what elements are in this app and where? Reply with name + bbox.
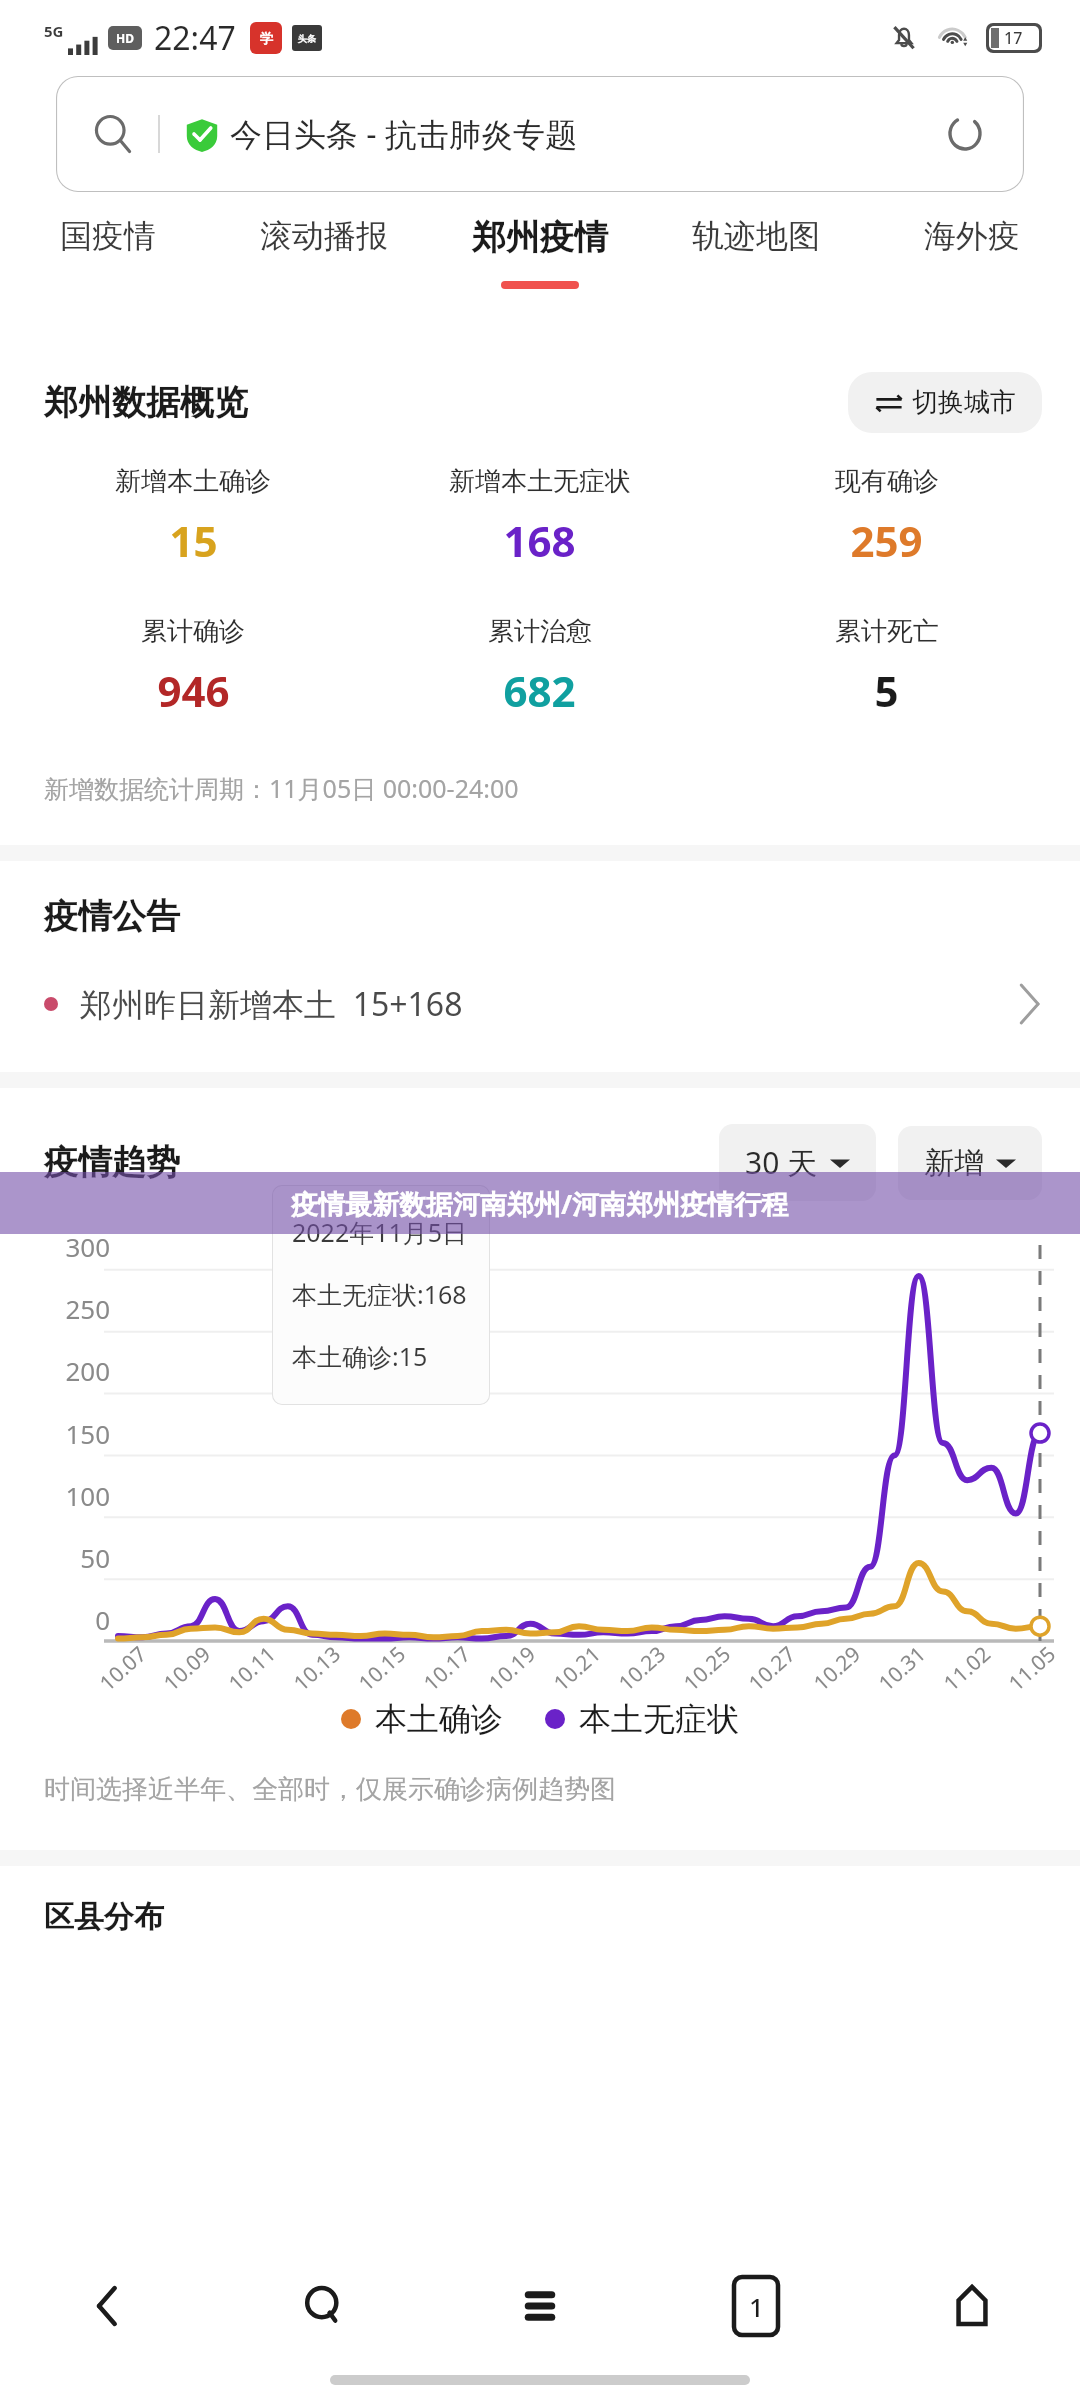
button[interactable]: Tabs [648,2277,864,2335]
staticText: 轨迹地图 [692,216,820,256]
staticText: 10.09 [157,1640,217,1697]
staticText: 30 天 [745,1142,818,1183]
staticText: 疫情最新数据河南郑州/河南郑州疫情行程 [291,1185,789,1222]
staticText: 22:47 [154,16,236,60]
button[interactable]: 30 天 [719,1124,876,1201]
staticText: 累计确诊 [141,615,245,648]
staticText: 10.25 [677,1640,737,1697]
staticText: 头条 [298,33,316,44]
button[interactable]: 新增 [898,1126,1042,1200]
staticText: 新增 [924,1144,984,1182]
staticText: 2022年11月5日 [292,1215,468,1249]
button[interactable]: 新增本土确诊 [20,465,366,569]
button[interactable]: 累计确诊 [20,615,366,719]
staticText: 5 [874,662,899,719]
button[interactable]: 新增本土无症状 [366,465,713,569]
button[interactable]: 滚动播报 [216,216,432,278]
staticText: 300 [65,1229,110,1264]
staticText: 本土确诊:15 [292,1339,428,1373]
staticText: 本土确诊 [375,1699,503,1739]
staticText: 郑州数据概览 [44,381,248,424]
staticText: 区县分布 [44,1898,164,1936]
staticText: 11.05 [1002,1640,1062,1697]
staticText: 郑州疫情 [472,216,608,259]
staticText: 10.13 [287,1640,347,1697]
staticText: 50 [80,1540,110,1575]
button[interactable]: 现有确诊 [713,465,1060,569]
button[interactable]: Menu [432,2246,648,2366]
button[interactable]: 郑州昨日新增本土 15+168 [0,982,1080,1026]
staticText: 17 [1004,27,1023,49]
staticText: 滚动播报 [260,216,388,256]
staticText: 250 [65,1291,110,1326]
staticText: 10.19 [482,1640,542,1697]
staticText: 学 [260,30,273,46]
button[interactable]: 切换城市 [848,372,1042,433]
staticText: HD [116,30,134,46]
staticText: 今日头条 - 抗击肺炎专题 [230,112,577,156]
button[interactable]: 本土确诊 [341,1699,503,1739]
button[interactable]: Search [216,2246,432,2366]
button[interactable]: 国疫情 [0,216,216,278]
button[interactable]: Back [0,2246,216,2366]
button[interactable]: Refresh [940,109,990,159]
staticText: 11.02 [937,1640,997,1697]
staticText: 新增本土无症状 [449,465,631,498]
button[interactable]: 郑州疫情 [432,216,648,289]
staticText: 海外疫 [924,216,1020,256]
other: Search [90,111,136,157]
staticText: 累计治愈 [488,615,592,648]
staticText: 切换城市 [912,386,1016,419]
staticText: 疫情趋势 [44,1141,180,1184]
staticText: 10.21 [547,1640,607,1697]
staticText: 0 [95,1602,110,1637]
button[interactable]: Home [864,2246,1080,2366]
staticText: 100 [65,1478,110,1513]
staticText: 本土无症状 [579,1699,739,1739]
staticText: 10.15 [352,1640,412,1697]
button[interactable]: 本土无症状 [545,1699,739,1739]
staticText: 10.31 [872,1640,932,1697]
staticText: 10.11 [222,1640,282,1697]
staticText: 新增本土确诊 [115,465,271,498]
staticText: 168 [503,512,576,569]
staticText: 10.17 [417,1640,477,1697]
staticText: 国疫情 [60,216,156,256]
staticText: 新增数据统计周期：11月05日 00:00-24:00 [44,771,519,805]
staticText: 10.23 [612,1640,672,1697]
button[interactable]: 累计死亡 [713,615,1060,719]
staticText: 10.27 [742,1640,802,1697]
staticText: 疫情公告 [44,895,180,938]
staticText: 本土无症状:168 [292,1277,467,1311]
staticText: 现有确诊 [835,465,939,498]
staticText: 259 [850,512,923,569]
button[interactable]: Search [56,76,1024,192]
staticText: 946 [157,662,230,719]
staticText: 5G [44,21,64,41]
staticText: 682 [503,662,576,719]
staticText: 累计死亡 [835,615,939,648]
staticText: 时间选择近半年、全部时，仅展示确诊病例趋势图 [44,1773,616,1806]
staticText: 200 [65,1353,110,1388]
staticText: 郑州昨日新增本土 15+168 [80,982,463,1026]
button[interactable]: 海外疫 [864,216,1080,278]
staticText: 10.29 [807,1640,867,1697]
button[interactable]: 轨迹地图 [648,216,864,278]
staticText: 10.07 [93,1640,153,1697]
staticText: 150 [65,1416,110,1451]
staticText: 15 [169,512,218,569]
staticText: 1 [749,2289,764,2324]
button[interactable]: 累计治愈 [366,615,713,719]
